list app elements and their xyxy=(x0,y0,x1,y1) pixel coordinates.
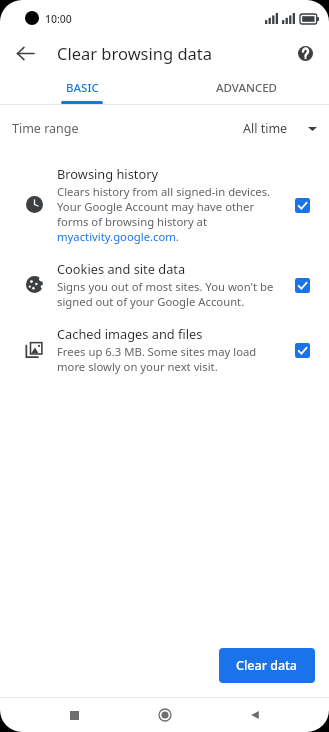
button[interactable]: Recents xyxy=(57,698,91,732)
staticText: Cached images and files xyxy=(57,325,203,342)
staticText: Clear data xyxy=(236,657,298,674)
button[interactable]: Time range xyxy=(0,105,329,151)
staticText: Frees up 6.3 MB. Some sites may load mor… xyxy=(57,344,279,374)
button[interactable]: Clear data xyxy=(219,648,315,683)
button[interactable]: Cached images and files xyxy=(0,325,329,374)
staticText: Clears history from all signed-in device… xyxy=(57,184,279,244)
staticText: Cookies and site data xyxy=(57,260,186,277)
button[interactable]: Back xyxy=(238,698,272,732)
button[interactable]: ADVANCED xyxy=(164,72,329,104)
staticText: 10:00 xyxy=(45,12,72,26)
button[interactable]: Toggle xyxy=(287,335,317,365)
button[interactable]: Toggle xyxy=(287,190,317,220)
button[interactable]: Toggle xyxy=(287,270,317,300)
staticText: Signs you out of most sites. You won't b… xyxy=(57,279,279,309)
button[interactable]: Help xyxy=(289,37,321,69)
staticText: All time xyxy=(243,120,288,137)
button[interactable]: Home xyxy=(148,698,182,732)
staticText: BASIC xyxy=(66,80,99,96)
button[interactable]: Back xyxy=(8,36,42,70)
staticText: Clear browsing data xyxy=(57,42,213,64)
button[interactable]: Browsing history xyxy=(0,165,329,244)
button[interactable]: BASIC xyxy=(0,72,164,104)
staticText: ADVANCED xyxy=(216,80,278,96)
staticText: Time range xyxy=(12,120,79,137)
staticText: Browsing history xyxy=(57,165,158,182)
button[interactable]: Cookies and site data xyxy=(0,260,329,309)
